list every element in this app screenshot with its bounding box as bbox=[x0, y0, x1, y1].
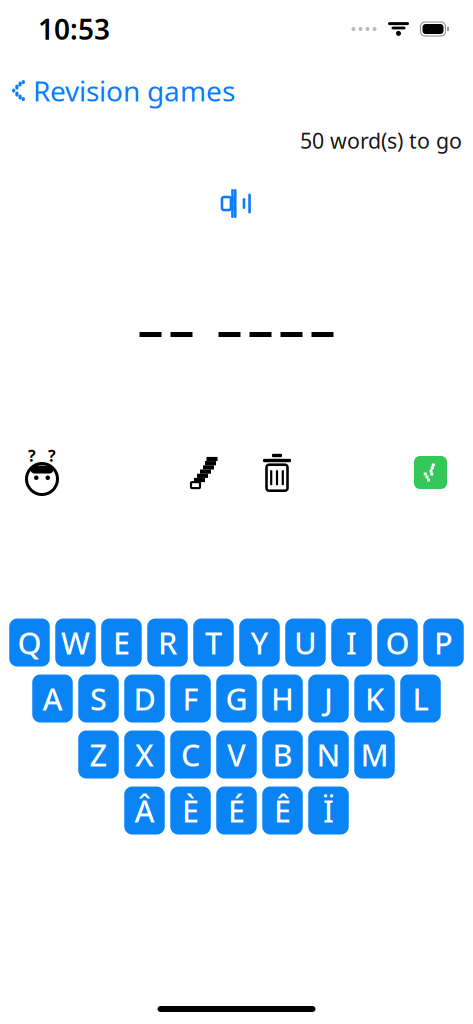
staticText: E bbox=[113, 622, 130, 663]
staticText: F bbox=[182, 678, 198, 719]
button[interactable]: É bbox=[216, 786, 257, 834]
staticText: A bbox=[42, 678, 62, 719]
button[interactable]: Z bbox=[78, 730, 119, 778]
staticText: Revision games bbox=[33, 72, 235, 109]
button[interactable]: X bbox=[124, 730, 165, 778]
staticText: I bbox=[346, 622, 357, 663]
staticText: T bbox=[205, 622, 222, 663]
button[interactable]: B bbox=[262, 730, 303, 778]
staticText: 50 word(s) to go bbox=[300, 126, 462, 154]
staticText: M bbox=[360, 734, 388, 775]
staticText: G bbox=[225, 678, 247, 719]
staticText: H bbox=[271, 678, 294, 719]
staticText: Ï bbox=[323, 790, 334, 831]
staticText: B bbox=[272, 734, 292, 775]
button[interactable]: O bbox=[377, 618, 418, 666]
staticText: S bbox=[90, 678, 107, 719]
staticText: ? bbox=[48, 445, 56, 466]
staticText: K bbox=[365, 678, 384, 719]
button[interactable]: N bbox=[308, 730, 349, 778]
button[interactable]: S bbox=[78, 674, 119, 722]
staticText: P bbox=[434, 622, 453, 663]
button[interactable]: Ï bbox=[308, 786, 349, 834]
button[interactable]: J bbox=[308, 674, 349, 722]
staticText: J bbox=[324, 678, 333, 719]
button[interactable]: U bbox=[285, 618, 326, 666]
button[interactable]: Play word audio bbox=[203, 176, 269, 230]
staticText: D bbox=[133, 678, 155, 719]
button[interactable]: E bbox=[101, 618, 142, 666]
staticText: Z bbox=[89, 734, 107, 775]
button[interactable]: Q bbox=[9, 618, 50, 666]
staticText: N bbox=[316, 734, 340, 775]
button[interactable]: A bbox=[32, 674, 73, 722]
staticText: È bbox=[182, 790, 199, 831]
button[interactable]: W bbox=[55, 618, 96, 666]
staticText: R bbox=[158, 622, 177, 663]
button[interactable]: M bbox=[354, 730, 395, 778]
staticText: X bbox=[135, 734, 154, 775]
button[interactable]: Hint bbox=[16, 446, 68, 498]
button[interactable]: P bbox=[423, 618, 464, 666]
button[interactable]: Edit letters bbox=[180, 446, 232, 498]
button[interactable]: Y bbox=[239, 618, 280, 666]
button[interactable]: V bbox=[216, 730, 257, 778]
button[interactable]: K bbox=[354, 674, 395, 722]
button[interactable]: H bbox=[262, 674, 303, 722]
staticText: ? bbox=[28, 445, 36, 466]
staticText: Â bbox=[134, 790, 154, 831]
button[interactable]: Â bbox=[124, 786, 165, 834]
staticText: 10:53 bbox=[38, 10, 110, 48]
button[interactable]: F bbox=[170, 674, 211, 722]
staticText: U bbox=[294, 622, 317, 663]
button[interactable]: C bbox=[170, 730, 211, 778]
button[interactable]: G bbox=[216, 674, 257, 722]
staticText: L bbox=[412, 678, 428, 719]
button[interactable]: Ê bbox=[262, 786, 303, 834]
staticText: O bbox=[385, 622, 409, 663]
staticText: Y bbox=[250, 622, 268, 663]
button[interactable]: T bbox=[193, 618, 234, 666]
staticText: W bbox=[61, 622, 90, 663]
button[interactable]: Revision games bbox=[0, 67, 245, 114]
button[interactable]: D bbox=[124, 674, 165, 722]
button[interactable]: Clear bbox=[252, 446, 302, 498]
button[interactable]: I bbox=[331, 618, 372, 666]
staticText: Q bbox=[17, 622, 41, 663]
staticText: É bbox=[228, 790, 245, 831]
button[interactable]: È bbox=[170, 786, 211, 834]
button[interactable]: L bbox=[400, 674, 441, 722]
staticText: V bbox=[227, 734, 246, 775]
staticText: C bbox=[181, 734, 200, 775]
button[interactable]: R bbox=[147, 618, 188, 666]
button[interactable]: Check answer bbox=[414, 456, 447, 489]
staticText: Ê bbox=[274, 790, 291, 831]
